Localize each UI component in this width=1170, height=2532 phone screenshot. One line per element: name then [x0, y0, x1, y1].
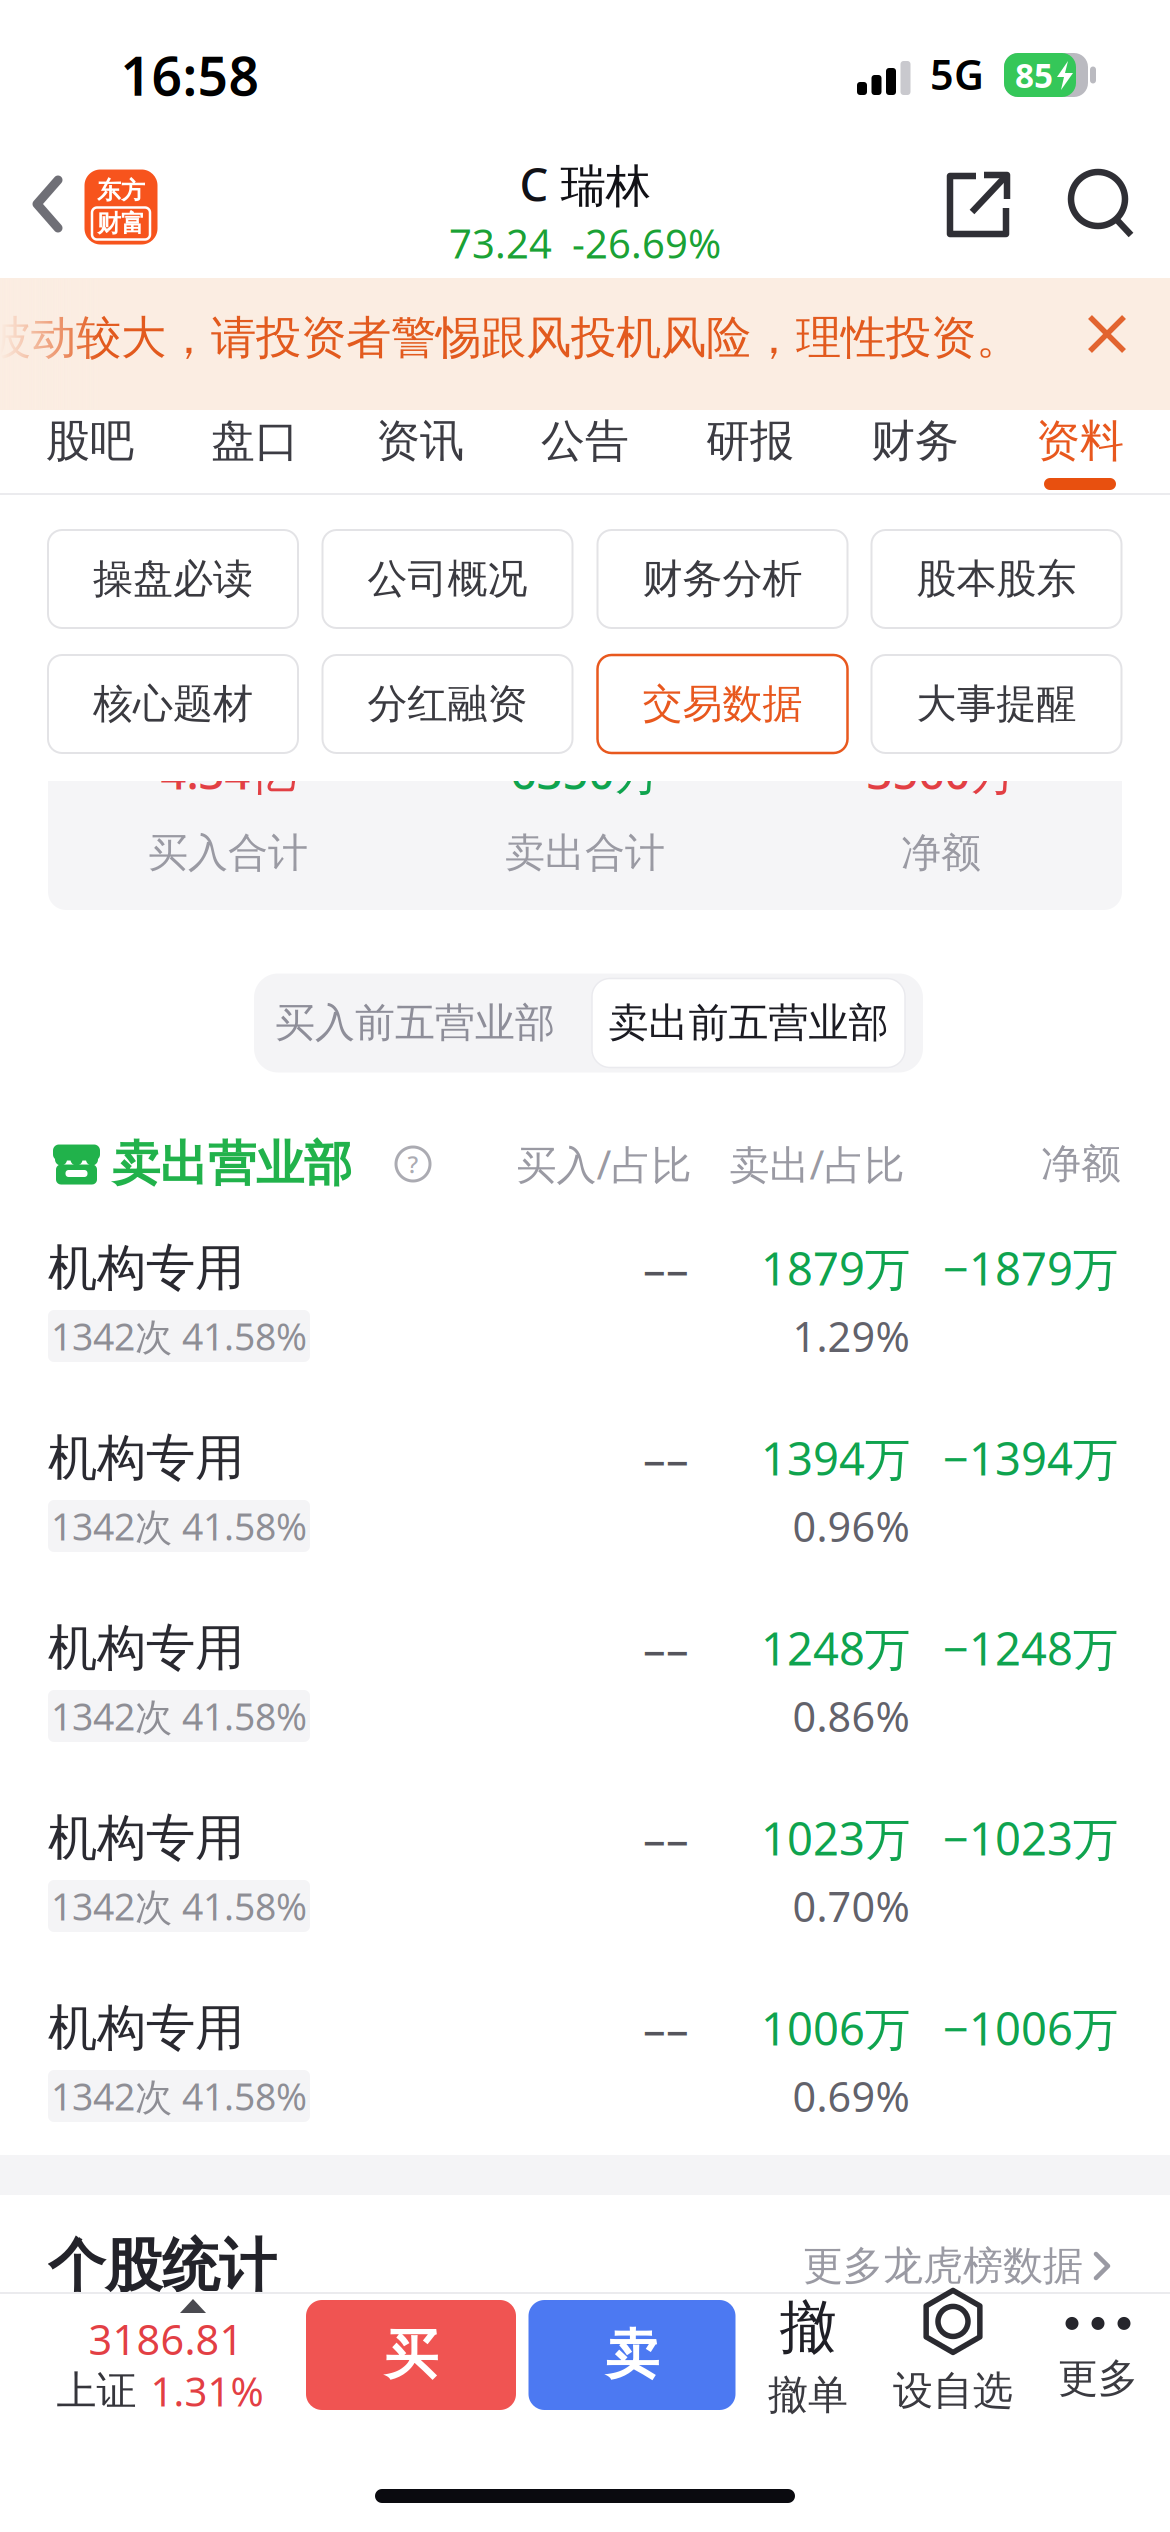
staticText: 1006万: [761, 1998, 910, 2058]
button[interactable]: 上证指数: [25, 2295, 265, 2425]
button[interactable]: 分享: [946, 172, 1010, 238]
staticText: 机构专用: [48, 1998, 244, 2058]
button[interactable]: 公司概况: [322, 530, 572, 628]
staticText: 1342次 41.58%: [51, 1501, 307, 1551]
staticText: 3560万: [866, 742, 1015, 802]
staticText: 买入前五营业部: [275, 998, 555, 1047]
button[interactable]: 盘口: [200, 406, 310, 476]
staticText: 股本股东: [916, 554, 1076, 603]
staticText: 机构专用: [48, 1808, 244, 1868]
staticText: 净额: [1041, 1139, 1121, 1188]
button[interactable]: 设自选: [873, 2287, 1033, 2417]
button[interactable]: 买: [306, 2300, 516, 2410]
staticText: −1248万: [943, 1618, 1118, 1678]
button[interactable]: 资料: [1025, 406, 1135, 476]
staticText: 6350万: [510, 742, 659, 802]
staticText: C 瑞林: [519, 154, 650, 214]
button[interactable]: 更多: [1033, 2300, 1163, 2420]
staticText: 撤单: [768, 2371, 848, 2420]
staticText: 上证: [56, 2366, 136, 2415]
staticText: 买: [384, 2322, 437, 2388]
button[interactable]: 撤: [743, 2291, 873, 2421]
staticText: 大事提醒: [916, 679, 1076, 728]
staticText: 买入/占比: [516, 1137, 691, 1190]
staticText: 个股统计: [48, 2231, 276, 2301]
staticText: ?: [407, 1148, 418, 1180]
button[interactable]: 搜索: [1071, 172, 1133, 236]
staticText: 0.69%: [792, 2069, 909, 2123]
staticText: 卖出营业部: [112, 1134, 352, 1193]
staticText: 卖: [605, 2322, 658, 2388]
staticText: 撤: [779, 2292, 836, 2363]
staticText: ––: [643, 1428, 689, 1488]
staticText: 资讯: [376, 414, 464, 468]
staticText: 更多: [1058, 2354, 1138, 2403]
button[interactable]: 资讯: [365, 406, 475, 476]
staticText: ––: [643, 1998, 689, 2058]
staticText: 机构专用: [48, 1618, 244, 1678]
staticText: 机构专用: [48, 1238, 244, 1298]
staticText: 分红融资: [367, 679, 527, 728]
button[interactable]: 卖出前五营业部: [592, 973, 905, 1072]
button[interactable]: 返回: [32, 175, 64, 233]
staticText: −1394万: [943, 1428, 1118, 1488]
staticText: 公告: [541, 414, 629, 468]
staticText: 85: [1015, 53, 1053, 97]
staticText: ––: [643, 1238, 689, 1298]
button[interactable]: 买入前五营业部: [254, 973, 576, 1072]
staticText: 16:58: [120, 40, 259, 110]
staticText: −1879万: [943, 1238, 1118, 1298]
staticText: 研报: [706, 414, 794, 468]
staticText: 财务分析: [642, 554, 802, 603]
button[interactable]: 更多龙虎榜数据: [803, 2241, 1111, 2290]
staticText: 东方: [97, 176, 145, 205]
staticText: 3186.81: [88, 2312, 243, 2366]
staticText: 资料: [1036, 414, 1124, 468]
button[interactable]: 财务分析: [597, 530, 847, 628]
button[interactable]: 交易数据: [597, 655, 847, 753]
staticText: 操盘必读: [93, 554, 253, 603]
staticText: 设自选: [893, 2366, 1013, 2415]
button[interactable]: 股吧: [35, 406, 145, 476]
staticText: 股吧: [46, 414, 134, 468]
staticText: 1342次 41.58%: [51, 1311, 307, 1361]
staticText: 盘口: [211, 414, 299, 468]
button[interactable]: 分红融资: [322, 655, 572, 753]
staticText: 净额: [901, 828, 981, 877]
button[interactable]: 帮助: [393, 1144, 433, 1184]
staticText: 1.29%: [792, 1309, 909, 1363]
staticText: 1.31%: [150, 2364, 263, 2417]
staticText: ––: [643, 1808, 689, 1868]
staticText: 73.24 -26.69%: [449, 216, 721, 269]
staticText: 卖出合计: [505, 828, 665, 877]
staticText: ––: [643, 1618, 689, 1678]
staticText: 1879万: [761, 1238, 910, 1298]
staticText: 1342次 41.58%: [51, 1691, 307, 1741]
button[interactable]: 研报: [695, 406, 805, 476]
button[interactable]: 财务: [860, 406, 970, 476]
button[interactable]: 公告: [530, 406, 640, 476]
staticText: 机构专用: [48, 1428, 244, 1488]
staticText: 财富: [97, 209, 145, 238]
button[interactable]: 关闭: [1088, 315, 1126, 353]
button[interactable]: 东方财富: [84, 169, 157, 244]
staticText: 卖出/占比: [729, 1137, 904, 1190]
staticText: 1342次 41.58%: [51, 2071, 307, 2121]
staticText: 财务: [871, 414, 959, 468]
staticText: 交易数据: [642, 679, 802, 728]
button[interactable]: 卖: [528, 2300, 735, 2410]
staticText: 核心题材: [93, 679, 253, 728]
staticText: 1394万: [761, 1428, 910, 1488]
staticText: −1006万: [943, 1998, 1118, 2058]
staticText: 卖出前五营业部: [608, 998, 888, 1047]
staticText: 0.70%: [792, 1879, 909, 1933]
staticText: 0.86%: [792, 1689, 909, 1743]
staticText: 1023万: [761, 1808, 910, 1868]
staticText: 1342次 41.58%: [51, 1881, 307, 1931]
staticText: 买入合计: [148, 828, 308, 877]
button[interactable]: 操盘必读: [48, 530, 298, 628]
button[interactable]: 大事提醒: [871, 655, 1121, 753]
button[interactable]: 股本股东: [871, 530, 1121, 628]
staticText: 波动较大，请投资者警惕跟风投机风险，理性投资。: [0, 310, 1021, 366]
button[interactable]: 核心题材: [48, 655, 298, 753]
